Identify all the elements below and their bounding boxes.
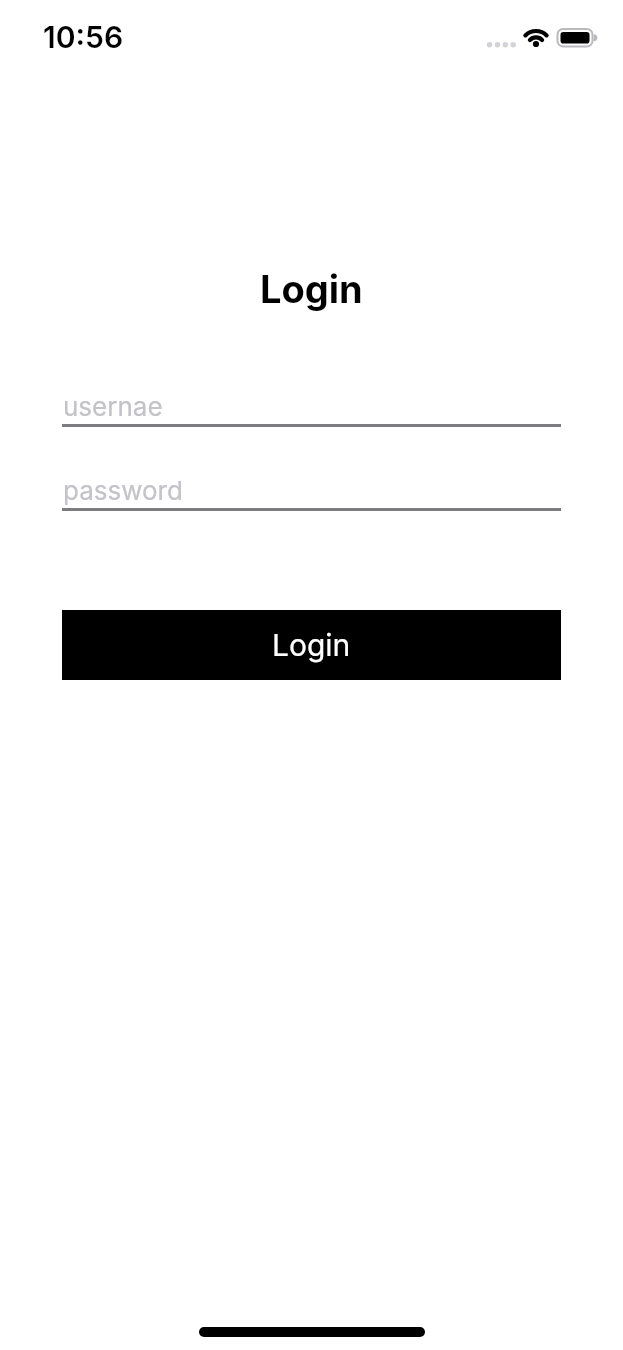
button[interactable]: password [62, 472, 561, 511]
staticText: Login [272, 627, 351, 663]
staticText: Login [260, 266, 363, 312]
staticText: password [63, 475, 183, 506]
staticText: usernae [63, 391, 163, 422]
staticText: 10:56 [43, 19, 124, 55]
button[interactable]: usernae [62, 388, 561, 427]
button[interactable]: Login [62, 610, 561, 680]
